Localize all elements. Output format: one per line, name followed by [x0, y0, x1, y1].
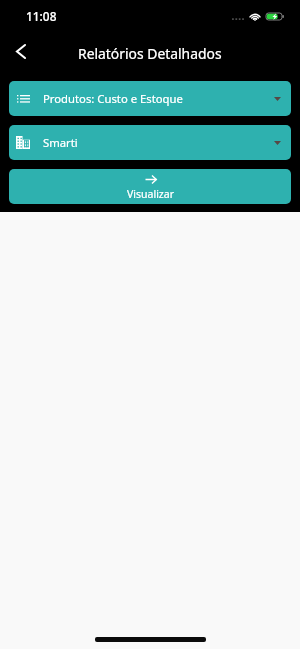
staticText: Visualizar	[127, 187, 174, 201]
staticText: Produtos: Custo e Estoque	[43, 91, 183, 106]
button[interactable]: Back	[5, 36, 36, 67]
staticText: 11:08	[26, 8, 57, 24]
button[interactable]: Produtos: Custo e Estoque	[9, 81, 291, 116]
staticText: Relatórios Detalhados	[78, 44, 222, 63]
staticText: Smarti	[43, 135, 78, 150]
button[interactable]: Smarti	[9, 125, 291, 160]
button[interactable]: Visualizar	[9, 169, 291, 204]
